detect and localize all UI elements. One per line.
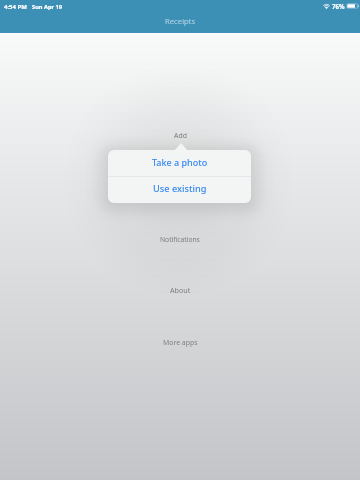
button[interactable]: About: [0, 284, 360, 296]
other: Battery 76 percent: [347, 3, 359, 9]
staticText: Sun Apr 19: [32, 3, 63, 11]
button[interactable]: Add: [0, 129, 360, 141]
staticText: 76%: [332, 2, 345, 10]
button[interactable]: Take a photo: [108, 150, 251, 176]
staticText: About: [170, 285, 191, 295]
staticText: Add: [174, 131, 187, 140]
staticText: Notifications: [160, 235, 200, 244]
staticText: More apps: [163, 338, 198, 347]
staticText: Take a photo: [152, 156, 208, 168]
button[interactable]: More apps: [0, 336, 360, 348]
button[interactable]: Use existing: [108, 177, 251, 203]
staticText: Receipts: [165, 16, 196, 27]
other: Wi-Fi: [323, 4, 330, 9]
staticText: 4:54 PM: [4, 3, 27, 11]
button[interactable]: Notifications: [0, 233, 360, 245]
staticText: Use existing: [153, 182, 207, 195]
